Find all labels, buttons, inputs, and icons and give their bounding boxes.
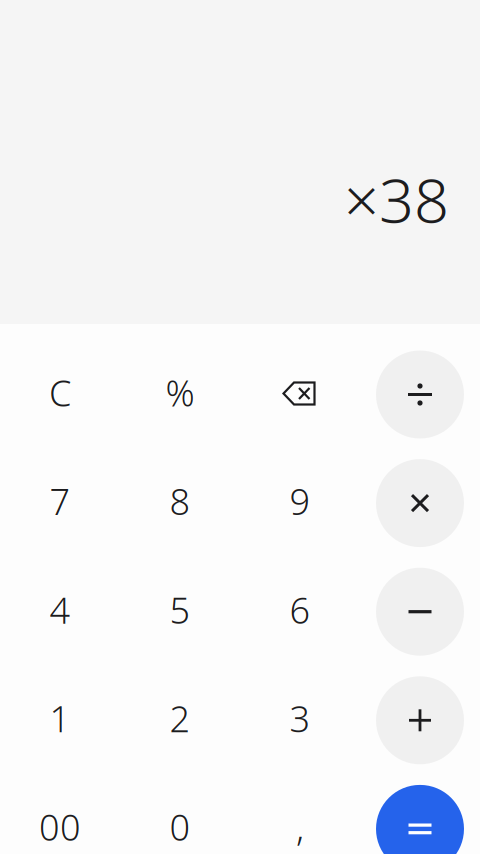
staticText: ×38: [344, 158, 449, 240]
staticText: 8: [169, 477, 190, 525]
button[interactable]: ,: [240, 773, 360, 854]
staticText: 3: [289, 694, 310, 742]
staticText: 4: [49, 586, 70, 634]
button[interactable]: C: [0, 338, 120, 447]
button[interactable]: Divide: [360, 340, 480, 449]
button[interactable]: 9: [240, 447, 360, 555]
button[interactable]: 1: [0, 664, 120, 773]
staticText: 9: [289, 477, 310, 525]
staticText: 2: [169, 694, 190, 742]
button[interactable]: 4: [0, 555, 120, 664]
button[interactable]: 2: [120, 664, 240, 773]
staticText: C: [49, 369, 71, 416]
button[interactable]: 5: [120, 555, 240, 664]
staticText: 6: [289, 586, 310, 634]
staticText: %: [165, 369, 194, 416]
button[interactable]: 7: [0, 447, 120, 555]
button[interactable]: %: [120, 338, 240, 447]
button[interactable]: 8: [120, 447, 240, 555]
button[interactable]: Add: [360, 666, 480, 775]
button[interactable]: Subtract: [360, 557, 480, 666]
button[interactable]: 0: [120, 773, 240, 854]
staticText: 5: [169, 586, 190, 634]
staticText: 7: [49, 477, 70, 525]
staticText: 1: [49, 694, 70, 742]
button[interactable]: 00: [0, 773, 120, 854]
staticText: 00: [39, 803, 81, 851]
button[interactable]: Multiply: [360, 449, 480, 557]
button[interactable]: 6: [240, 555, 360, 664]
button[interactable]: Equals: [360, 775, 480, 854]
staticText: 0: [169, 803, 190, 851]
button[interactable]: 3: [240, 664, 360, 773]
button[interactable]: Backspace: [239, 339, 359, 448]
staticText: ,: [296, 803, 304, 851]
